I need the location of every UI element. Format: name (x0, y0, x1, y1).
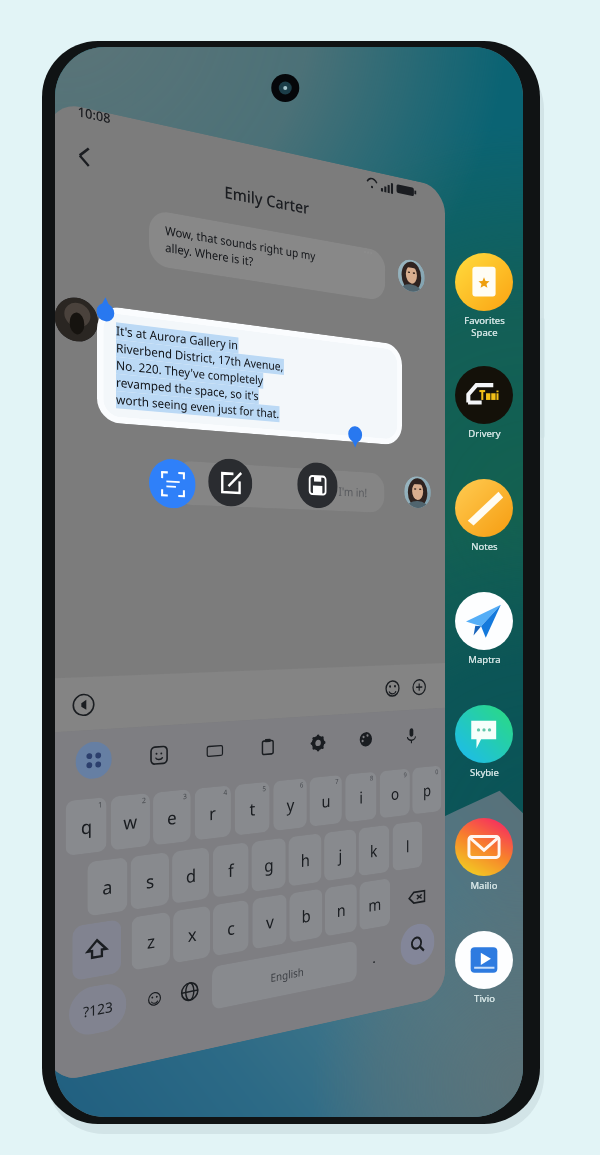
button[interactable]: z (132, 912, 170, 971)
button[interactable]: w (111, 793, 150, 851)
button[interactable]: e (153, 789, 191, 845)
staticText: 0 (435, 767, 439, 777)
staticText: m (368, 893, 381, 917)
button[interactable]: Favorites Space (444, 253, 523, 358)
button[interactable]: g (251, 838, 286, 892)
staticText: 2 (142, 795, 147, 806)
staticText: 1 (98, 800, 103, 811)
button[interactable]: Language (171, 965, 208, 1018)
button[interactable]: s (131, 852, 169, 910)
staticText: q (81, 814, 93, 840)
staticText: Riverbend District, 17th Avenue, (116, 339, 284, 375)
staticText: Notes (471, 540, 498, 553)
button[interactable]: Add attachment (408, 674, 430, 701)
staticText: 4 (223, 788, 228, 798)
staticText: s (146, 868, 155, 894)
staticText: Favorites Space (464, 314, 505, 338)
button[interactable]: English (212, 940, 357, 1010)
button[interactable]: o (380, 768, 410, 818)
button[interactable]: h (288, 833, 321, 887)
staticText: alley. Where is it? (165, 239, 253, 270)
staticText: y (287, 793, 295, 817)
staticText: ••• (363, 245, 373, 260)
button[interactable]: k (358, 825, 389, 876)
staticText: revamped the space, so it's (116, 374, 259, 404)
staticText: worth seeing even just for that. (116, 391, 279, 422)
staticText: 8 (370, 774, 374, 784)
staticText: English (270, 964, 304, 985)
button[interactable]: f (213, 842, 249, 898)
button[interactable]: Notes (444, 479, 523, 584)
staticText: t (250, 797, 256, 821)
button[interactable]: Search (400, 921, 435, 968)
button[interactable]: t (235, 782, 270, 836)
staticText: 7 (335, 777, 339, 787)
staticText: e (167, 805, 177, 830)
staticText: Skybie (470, 766, 499, 779)
button[interactable]: sticker (144, 738, 174, 772)
staticText: . (372, 947, 376, 967)
staticText: a (102, 874, 113, 900)
button[interactable]: Emoji key (135, 972, 173, 1026)
button[interactable]: v (252, 894, 287, 949)
staticText: p (423, 779, 431, 801)
button[interactable]: mic (400, 721, 423, 751)
staticText: ?123 (83, 997, 113, 1022)
button[interactable]: Back (66, 133, 102, 178)
button[interactable]: m (359, 878, 390, 930)
staticText: 5 (262, 784, 267, 794)
staticText: n (337, 898, 346, 922)
staticText: Drivery (468, 427, 501, 440)
staticText: b (302, 904, 311, 928)
staticText: Emily Carter (224, 181, 309, 219)
button[interactable]: y (273, 778, 307, 831)
button[interactable]: n (325, 883, 357, 937)
button[interactable]: . (362, 935, 386, 980)
button[interactable]: Emoji (381, 675, 404, 702)
staticText: v (266, 910, 274, 934)
button[interactable]: Backspace (399, 871, 435, 923)
button[interactable]: c (213, 900, 249, 956)
button[interactable]: gear (305, 727, 331, 759)
staticText: 3 (183, 791, 188, 802)
button[interactable]: u (309, 775, 342, 827)
button[interactable]: gif (200, 735, 229, 768)
staticText: f (228, 858, 234, 882)
button[interactable]: q (66, 797, 106, 856)
button[interactable]: Drivery (444, 366, 523, 471)
staticText: w (123, 809, 138, 835)
button[interactable]: Maptra (444, 592, 523, 697)
staticText: d (186, 863, 197, 888)
button[interactable]: ?123 (69, 980, 126, 1039)
button[interactable]: Collapse keyboard (68, 688, 98, 720)
button[interactable]: clip (254, 731, 281, 763)
button[interactable]: j (324, 829, 356, 881)
button[interactable]: It's at Aurora Gallery in (97, 305, 402, 446)
staticText: g (264, 853, 274, 877)
button[interactable]: Edit (208, 457, 252, 507)
staticText: o (391, 782, 400, 805)
button[interactable]: palette (353, 724, 378, 755)
staticText: x (188, 922, 197, 947)
button[interactable]: Tivio (444, 931, 523, 1036)
button[interactable]: Shift (72, 919, 121, 981)
button[interactable]: Save (297, 461, 338, 509)
staticText: 9 (404, 770, 407, 780)
button[interactable]: Select text (149, 458, 196, 509)
staticText: l (406, 835, 410, 857)
button[interactable]: Mailio (444, 818, 523, 923)
button[interactable]: b (289, 888, 322, 943)
button[interactable]: d (172, 847, 209, 904)
button[interactable]: l (392, 821, 422, 871)
button[interactable]: a (87, 857, 127, 916)
button[interactable]: p (412, 765, 441, 814)
staticText: c (227, 916, 236, 941)
button[interactable]: i (345, 771, 376, 822)
button[interactable]: Wow, that sounds right up my (149, 209, 385, 301)
button[interactable]: x (173, 905, 210, 963)
staticText: j (338, 844, 343, 867)
staticText: z (147, 929, 155, 954)
button[interactable]: r (195, 785, 231, 840)
button[interactable]: Skybie (444, 705, 523, 810)
button[interactable]: Keyboard apps (75, 741, 112, 780)
